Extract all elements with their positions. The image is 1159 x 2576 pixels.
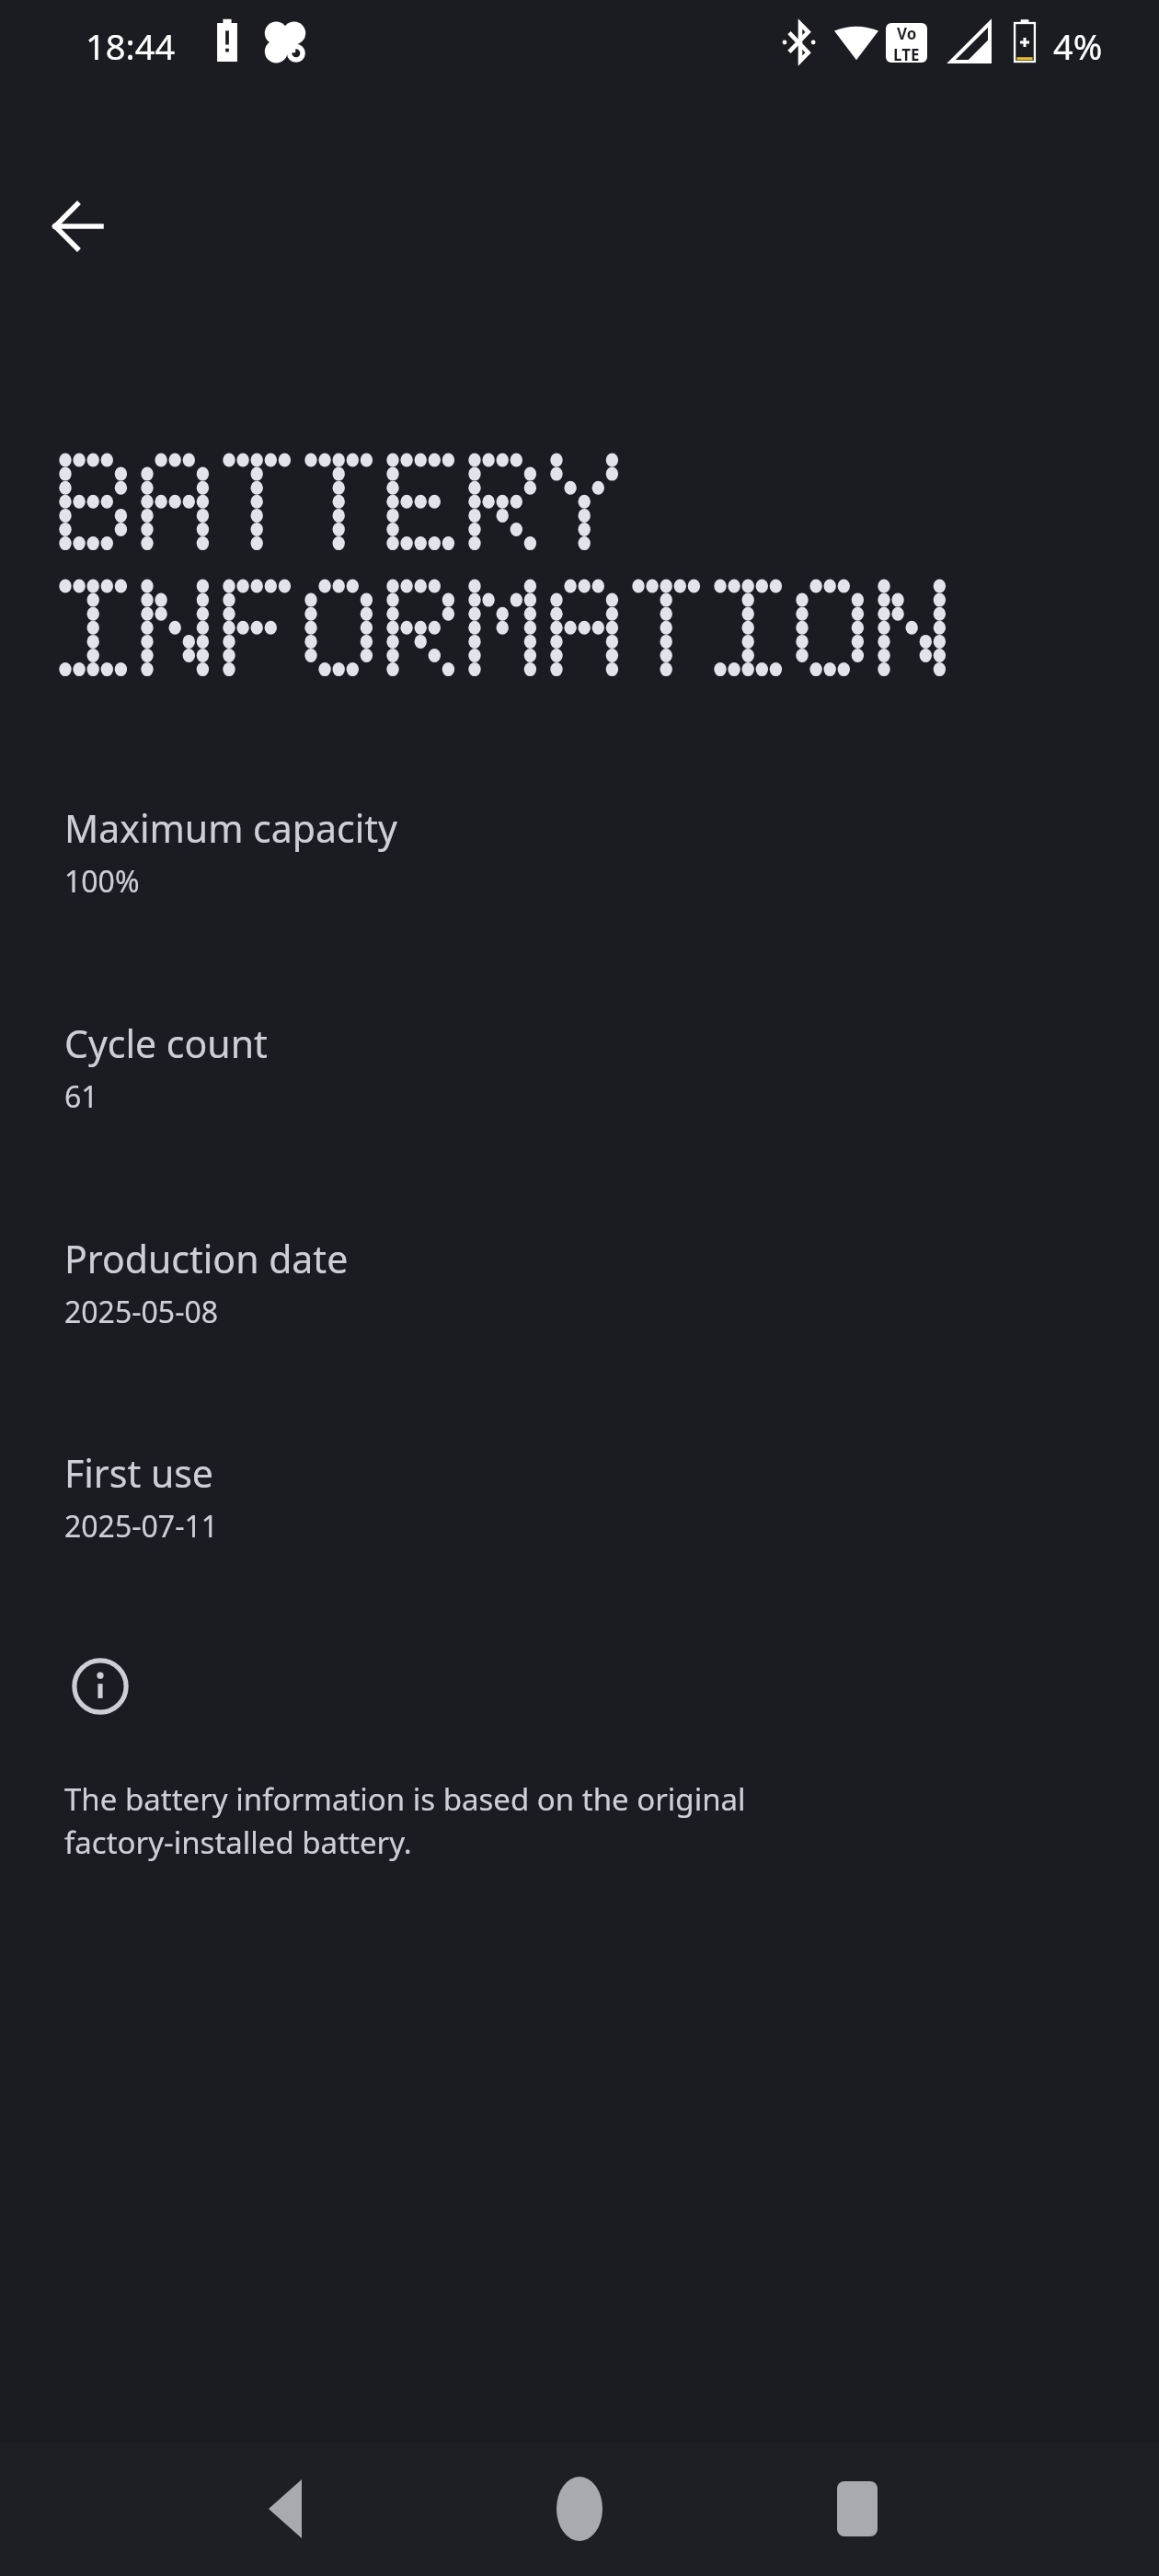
staticText: 61: [64, 1076, 98, 1117]
staticText: 100%: [64, 861, 140, 902]
button[interactable]: Back: [22, 171, 132, 282]
staticText: 4%: [1053, 22, 1103, 70]
staticText: Vo: [897, 23, 917, 44]
staticText: Production date: [64, 1233, 349, 1284]
button[interactable]: Cycle count: [0, 1018, 1159, 1117]
button[interactable]: Home: [524, 2454, 635, 2564]
staticText: Cycle count: [64, 1018, 268, 1069]
button[interactable]: Recent apps: [802, 2454, 912, 2564]
staticText: First use: [64, 1447, 213, 1499]
staticText: 2025-07-11: [64, 1506, 219, 1547]
staticText: 18:44: [86, 22, 176, 70]
staticText: The battery information is based on the …: [64, 1778, 1159, 1863]
button[interactable]: First use: [0, 1447, 1159, 1547]
button[interactable]: Back: [232, 2454, 342, 2564]
staticText: 2025-05-08: [64, 1292, 219, 1332]
button[interactable]: Production date: [0, 1233, 1159, 1332]
staticText: LTE: [893, 44, 920, 63]
button[interactable]: Maximum capacity: [0, 802, 1159, 902]
staticText: Maximum capacity: [64, 802, 397, 854]
